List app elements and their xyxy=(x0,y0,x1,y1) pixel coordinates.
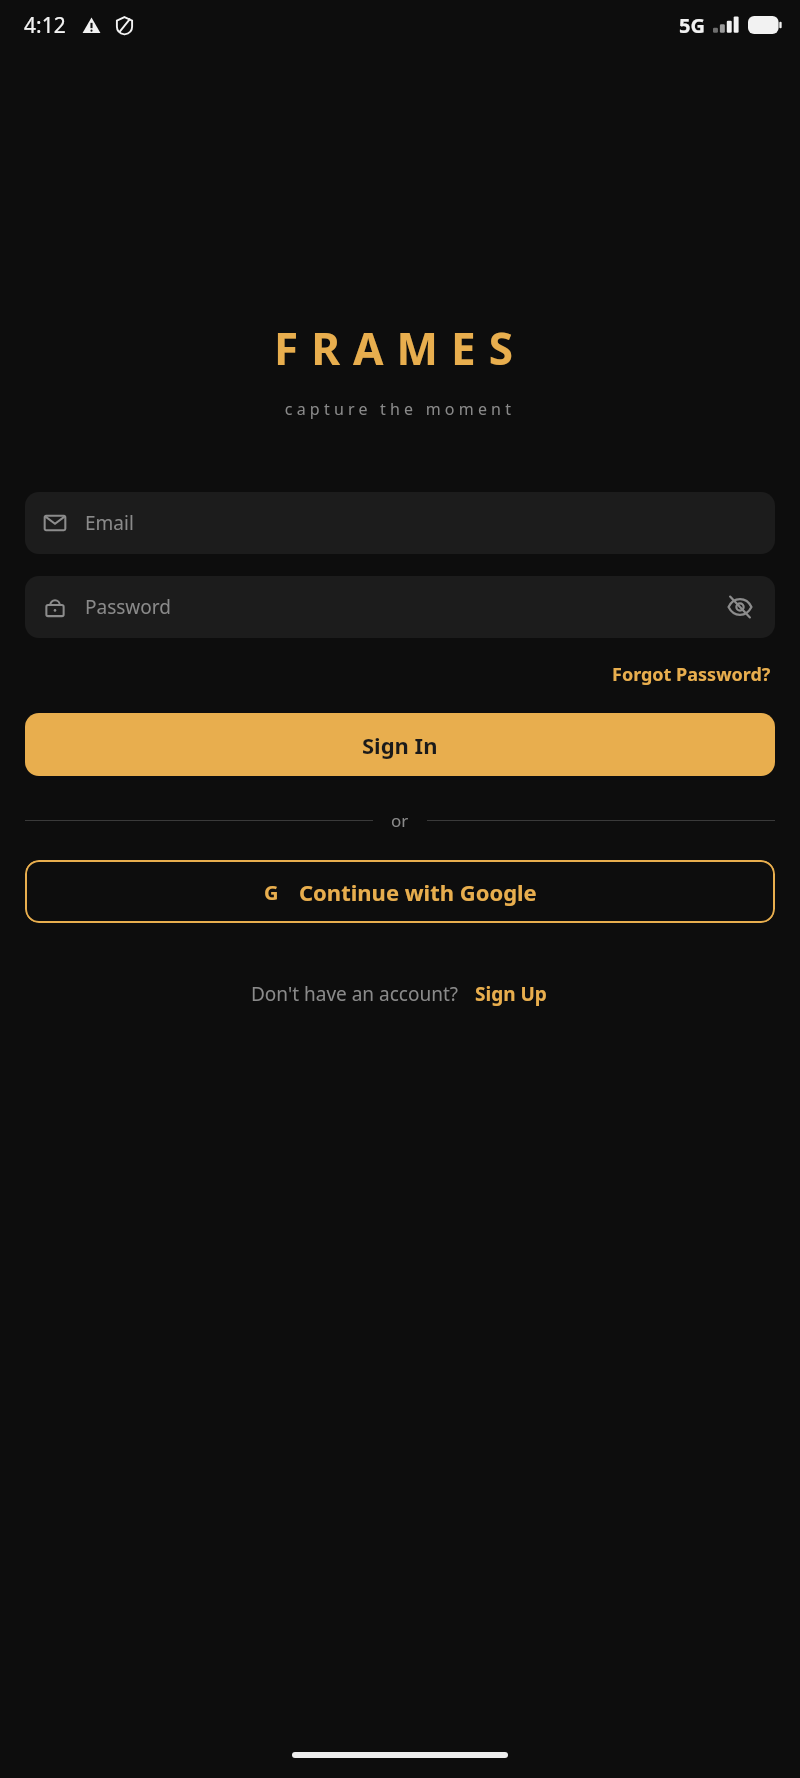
staticText: capture the moment xyxy=(0,398,800,420)
staticText: or xyxy=(391,809,409,832)
staticText: Forgot Password? xyxy=(612,662,771,687)
staticText: Email xyxy=(85,510,134,536)
other: Password xyxy=(43,595,67,619)
button[interactable]: Sign In xyxy=(25,713,775,776)
button[interactable]: Toggle password visibility xyxy=(723,590,757,624)
button[interactable]: G xyxy=(25,860,775,923)
staticText: Don't have an account? xyxy=(251,981,459,1007)
button[interactable]: Password xyxy=(25,576,775,638)
staticText: FRAMES xyxy=(0,318,800,378)
staticText: 5G xyxy=(679,12,705,39)
staticText: Continue with Google xyxy=(299,877,537,907)
other: Email xyxy=(43,511,67,535)
button[interactable]: Forgot Password? xyxy=(608,658,775,691)
staticText: G xyxy=(264,879,279,906)
staticText: Password xyxy=(85,594,723,620)
staticText: Sign In xyxy=(362,730,438,760)
staticText: Sign Up xyxy=(475,981,547,1007)
button[interactable]: Sign Up xyxy=(473,979,549,1009)
button[interactable]: Email xyxy=(25,492,775,554)
staticText: 4:12 xyxy=(24,11,66,40)
